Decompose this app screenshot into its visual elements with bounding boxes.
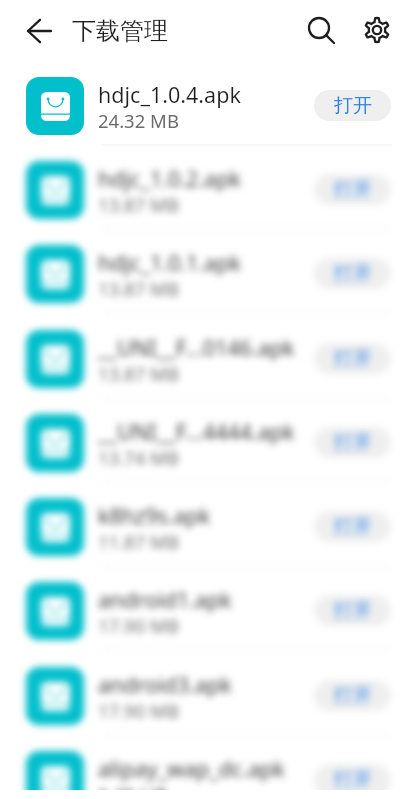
button[interactable]: 打开 <box>314 258 391 289</box>
button[interactable]: android3.apk <box>0 654 416 738</box>
staticText: 打开 <box>334 347 372 371</box>
staticText: 打开 <box>334 178 372 202</box>
button[interactable]: 打开 <box>314 90 391 121</box>
staticText: 11.87 MB <box>98 529 179 554</box>
staticText: hdjc_1.0.2.apk <box>98 164 241 193</box>
button[interactable]: 打开 <box>314 343 391 374</box>
staticText: android1.apk <box>98 585 232 614</box>
staticText: 打开 <box>334 684 372 708</box>
staticText: hdjc_1.0.4.apk <box>98 80 241 109</box>
staticText: 13.87 MB <box>98 276 179 301</box>
button[interactable]: 打开 <box>314 174 391 205</box>
button[interactable]: 打开 <box>314 511 391 542</box>
staticText: 9.63 MB <box>98 782 169 790</box>
button[interactable]: 打开 <box>314 427 391 458</box>
button[interactable]: 打开 <box>314 680 391 711</box>
button[interactable]: 打开 <box>314 764 391 790</box>
staticText: 打开 <box>334 768 372 790</box>
staticText: 打开 <box>334 431 372 455</box>
staticText: 打开 <box>334 599 372 623</box>
button[interactable]: hdjc_1.0.2.apk <box>0 148 416 232</box>
staticText: 打开 <box>334 515 372 539</box>
staticText: 打开 <box>334 94 372 118</box>
staticText: 17.90 MB <box>98 613 179 638</box>
staticText: __UNI__F...4444.apk <box>98 417 295 446</box>
staticText: 13.74 MB <box>98 445 179 470</box>
button[interactable]: hdjc_1.0.4.apk <box>0 64 416 148</box>
button[interactable]: hdjc_1.0.1.apk <box>0 232 416 316</box>
staticText: 13.87 MB <box>98 361 179 386</box>
button[interactable]: Search <box>300 8 346 54</box>
staticText: 24.32 MB <box>98 108 179 133</box>
staticText: __UNI__F...0146.apk <box>98 333 295 362</box>
staticText: 下载管理 <box>72 16 168 46</box>
staticText: 13.87 MB <box>98 192 179 217</box>
staticText: android3.apk <box>98 670 232 699</box>
button[interactable]: 打开 <box>314 595 391 626</box>
button[interactable]: alipay_wap_dc.apk <box>0 738 416 790</box>
staticText: hdjc_1.0.1.apk <box>98 248 241 277</box>
button[interactable]: __UNI__F...4444.apk <box>0 401 416 485</box>
staticText: alipay_wap_dc.apk <box>98 754 285 783</box>
staticText: 打开 <box>334 262 372 286</box>
staticText: k8hz9s.apk <box>98 501 211 530</box>
button[interactable]: k8hz9s.apk <box>0 485 416 569</box>
button[interactable]: Settings <box>354 7 400 53</box>
staticText: 17.90 MB <box>98 698 179 723</box>
button[interactable]: android1.apk <box>0 569 416 653</box>
button[interactable]: Back <box>15 6 65 56</box>
button[interactable]: __UNI__F...0146.apk <box>0 317 416 401</box>
